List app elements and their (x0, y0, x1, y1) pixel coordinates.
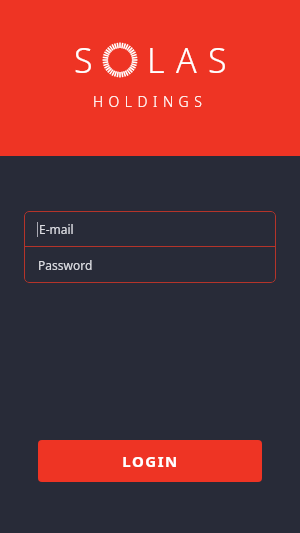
staticText: Password (38, 257, 93, 273)
staticText: A (176, 37, 197, 83)
button[interactable]: E-mail (24, 211, 276, 246)
button[interactable]: LOGIN (38, 440, 262, 482)
staticText: HOLDINGS (93, 92, 208, 111)
staticText: E-mail (39, 221, 74, 237)
staticText: S (208, 37, 227, 83)
staticText: LOGIN (122, 451, 179, 471)
staticText: L (147, 37, 165, 83)
button[interactable]: Password (24, 247, 276, 283)
other: Solas sun logo (102, 42, 138, 78)
staticText: S (74, 37, 93, 83)
